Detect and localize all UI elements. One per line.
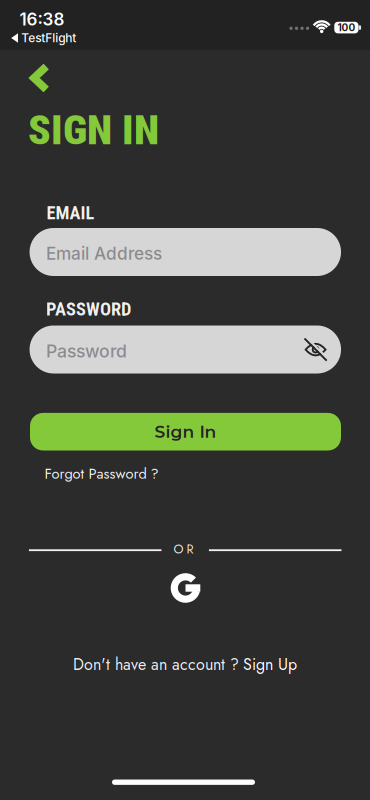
- button[interactable]: [304, 338, 328, 362]
- staticText: TestFlight: [21, 31, 76, 45]
- button[interactable]: Sign In: [30, 413, 341, 450]
- button[interactable]: TestFlight: [11, 31, 79, 45]
- button[interactable]: Email Address: [30, 228, 341, 276]
- button[interactable]: [170, 572, 201, 603]
- staticText: Forgot Password ?: [44, 463, 158, 484]
- staticText: R: [186, 540, 193, 558]
- staticText: Sign Up: [243, 653, 297, 676]
- staticText: PASSWORD: [46, 298, 131, 320]
- staticText: EMAIL: [46, 202, 94, 224]
- staticText: Sign In: [154, 421, 216, 442]
- staticText: Don't have an account ?: [73, 653, 239, 676]
- staticText: Email Address: [46, 243, 162, 264]
- staticText: SIGN IN: [28, 106, 159, 154]
- staticText: Password: [46, 340, 127, 362]
- button[interactable]: Sign Up: [243, 653, 297, 676]
- button[interactable]: Password: [30, 325, 341, 373]
- staticText: 16:38: [19, 9, 64, 29]
- button[interactable]: [29, 65, 51, 91]
- staticText: O: [173, 540, 183, 558]
- staticText: 100: [337, 22, 355, 34]
- button[interactable]: Forgot Password ?: [44, 463, 158, 484]
